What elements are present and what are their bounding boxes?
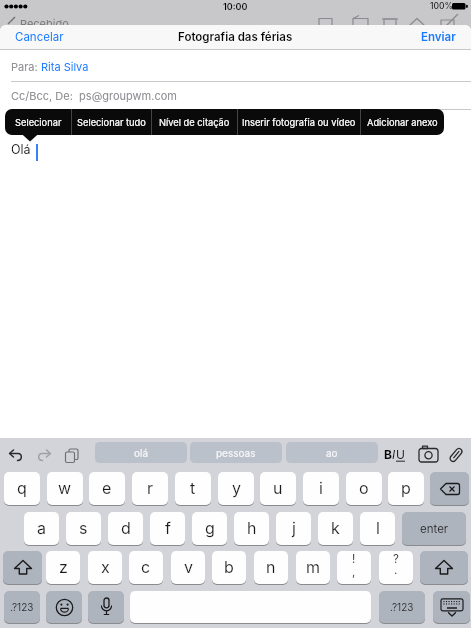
button[interactable]: z [46, 551, 80, 584]
button[interactable]: l [360, 512, 395, 545]
staticText: Enviar [421, 30, 456, 44]
staticText: Cancelar [15, 30, 64, 44]
staticText: 100% [430, 1, 453, 11]
button[interactable]: h [234, 512, 269, 545]
button[interactable]: a [24, 512, 59, 545]
staticText: Recebido [20, 17, 69, 30]
staticText: 10:00 [223, 1, 248, 12]
staticText: u [273, 478, 283, 497]
button[interactable]: i [303, 472, 339, 505]
button[interactable]: w [47, 472, 83, 505]
staticText: Selecionar tudo [77, 117, 146, 128]
button[interactable]: j [276, 512, 311, 545]
button[interactable]: b [212, 551, 246, 584]
staticText: Rita Silva [41, 60, 89, 73]
button[interactable]: .?123 [4, 591, 40, 623]
button[interactable]: p [388, 472, 424, 505]
staticText: Fotografia das férias [178, 30, 293, 44]
button[interactable]: o [346, 472, 382, 505]
button[interactable] [433, 591, 470, 623]
staticText: c [141, 557, 151, 576]
staticText: f [165, 518, 171, 537]
staticText: .?123 [10, 601, 34, 613]
button[interactable]: d [108, 512, 143, 545]
staticText: ! [352, 552, 356, 566]
staticText: I [392, 447, 396, 462]
staticText: enter [420, 522, 449, 536]
staticText: r [147, 478, 154, 497]
button[interactable]: Selecionar tudo [72, 109, 151, 135]
staticText: Adicionar anexo [367, 117, 438, 128]
staticText: i [319, 478, 323, 497]
staticText: .?123 [390, 601, 414, 613]
button[interactable]: t [175, 472, 211, 505]
button[interactable]: x [88, 551, 122, 584]
staticText: Inserir fotografia ou vídeo [242, 117, 356, 128]
staticText: , [352, 565, 356, 579]
button[interactable]: Para: [11, 49, 471, 83]
button[interactable] [88, 591, 124, 623]
button[interactable]: f [150, 512, 185, 545]
staticText: w [58, 478, 72, 497]
button[interactable]: r [132, 472, 168, 505]
staticText: x [101, 557, 110, 576]
button[interactable] [46, 591, 82, 623]
staticText: B [384, 447, 392, 462]
button[interactable]: q [4, 472, 40, 505]
staticText: Selecionar [15, 117, 62, 128]
staticText: d [121, 518, 131, 537]
button[interactable] [430, 472, 469, 505]
button[interactable]: u [260, 472, 296, 505]
staticText: Para: [11, 60, 41, 73]
button[interactable]: Adicionar anexo [361, 109, 444, 135]
button[interactable]: n [254, 551, 288, 584]
button[interactable]: Cancelar [15, 25, 64, 49]
staticText: b [224, 557, 234, 576]
staticText: q [17, 478, 27, 497]
staticText: m [306, 557, 321, 576]
staticText: l [376, 518, 380, 537]
staticText: pessoas [216, 447, 256, 459]
button[interactable]: ? [379, 551, 413, 584]
button[interactable]: Cc/Bcc, De: [11, 81, 471, 109]
button[interactable]: Enviar [421, 30, 456, 44]
button[interactable] [130, 591, 371, 623]
staticText: n [266, 557, 276, 576]
button[interactable]: Inserir fotografia ou vídeo [238, 109, 360, 135]
staticText: v [184, 557, 193, 576]
button[interactable]: Selecionar [5, 109, 71, 135]
button[interactable]: B [384, 446, 405, 462]
staticText: t [190, 478, 196, 497]
staticText: Nível de citação [159, 117, 230, 128]
button[interactable]: pessoas [190, 442, 282, 463]
button[interactable]: olá [95, 442, 187, 463]
button[interactable]: e [89, 472, 125, 505]
button[interactable]: k [318, 512, 353, 545]
staticText: z [59, 557, 68, 576]
staticText: o [359, 478, 369, 497]
button[interactable]: g [192, 512, 227, 545]
button[interactable]: ! [337, 551, 371, 584]
staticText: y [232, 478, 241, 497]
button[interactable] [3, 551, 42, 584]
button[interactable]: enter [402, 512, 466, 545]
button[interactable]: c [129, 551, 163, 584]
button[interactable]: m [296, 551, 330, 584]
button[interactable]: ao [286, 442, 378, 463]
staticText: ao [326, 447, 338, 459]
staticText: j [292, 518, 296, 537]
staticText: olá [134, 447, 149, 459]
staticText: Olá [11, 142, 31, 157]
staticText: p [401, 478, 411, 497]
staticText: k [331, 518, 340, 537]
button[interactable]: .?123 [379, 591, 425, 623]
button[interactable]: v [171, 551, 205, 584]
button[interactable]: y [218, 472, 254, 505]
staticText: h [247, 518, 257, 537]
staticText: s [79, 518, 88, 537]
staticText: ps@groupwm.com [76, 89, 177, 102]
button[interactable] [420, 551, 468, 584]
button[interactable]: Nível de citação [152, 109, 237, 135]
button[interactable]: s [66, 512, 101, 545]
staticText: ? [393, 552, 399, 566]
